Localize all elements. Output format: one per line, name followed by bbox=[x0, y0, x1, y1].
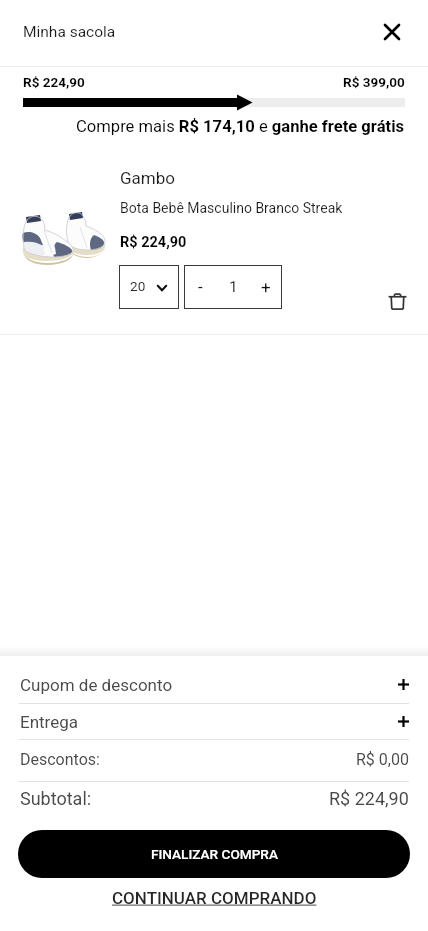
staticText: Descontos: bbox=[20, 750, 100, 769]
button[interactable]: 20 bbox=[119, 265, 179, 309]
staticText: Minha sacola bbox=[23, 23, 116, 41]
button[interactable] bbox=[0, 704, 428, 739]
staticText: Bota Bebê Masculino Branco Streak bbox=[120, 200, 343, 216]
staticText: Gambo bbox=[120, 168, 175, 188]
staticText: FINALIZAR COMPRA bbox=[151, 846, 278, 862]
staticText: CONTINUAR COMPRANDO bbox=[112, 888, 317, 908]
staticText: + bbox=[261, 277, 271, 297]
staticText: 1 bbox=[229, 278, 238, 296]
button[interactable]: + bbox=[249, 265, 282, 309]
staticText: R$ 224,90 bbox=[329, 788, 409, 809]
staticText: R$ 399,00 bbox=[343, 74, 405, 90]
staticText: Subtotal: bbox=[20, 788, 92, 809]
staticText: 20 bbox=[130, 278, 146, 294]
button[interactable]: Remover bbox=[377, 281, 417, 321]
button[interactable]: FINALIZAR COMPRA bbox=[18, 830, 410, 878]
staticText: Compre mais R$ 174,10 e ganhe frete grát… bbox=[76, 117, 405, 136]
staticText: Cupom de desconto bbox=[20, 675, 173, 695]
button[interactable]: Fechar bbox=[370, 10, 414, 54]
button[interactable]: CONTINUAR COMPRANDO bbox=[0, 888, 428, 916]
staticText: Entrega bbox=[20, 712, 79, 732]
button[interactable]: - bbox=[184, 265, 217, 309]
staticText: R$ 224,90 bbox=[23, 74, 85, 90]
staticText: R$ 224,90 bbox=[120, 234, 187, 251]
staticText: R$ 0,00 bbox=[356, 750, 409, 769]
button[interactable] bbox=[0, 660, 428, 703]
staticText: - bbox=[198, 277, 203, 297]
